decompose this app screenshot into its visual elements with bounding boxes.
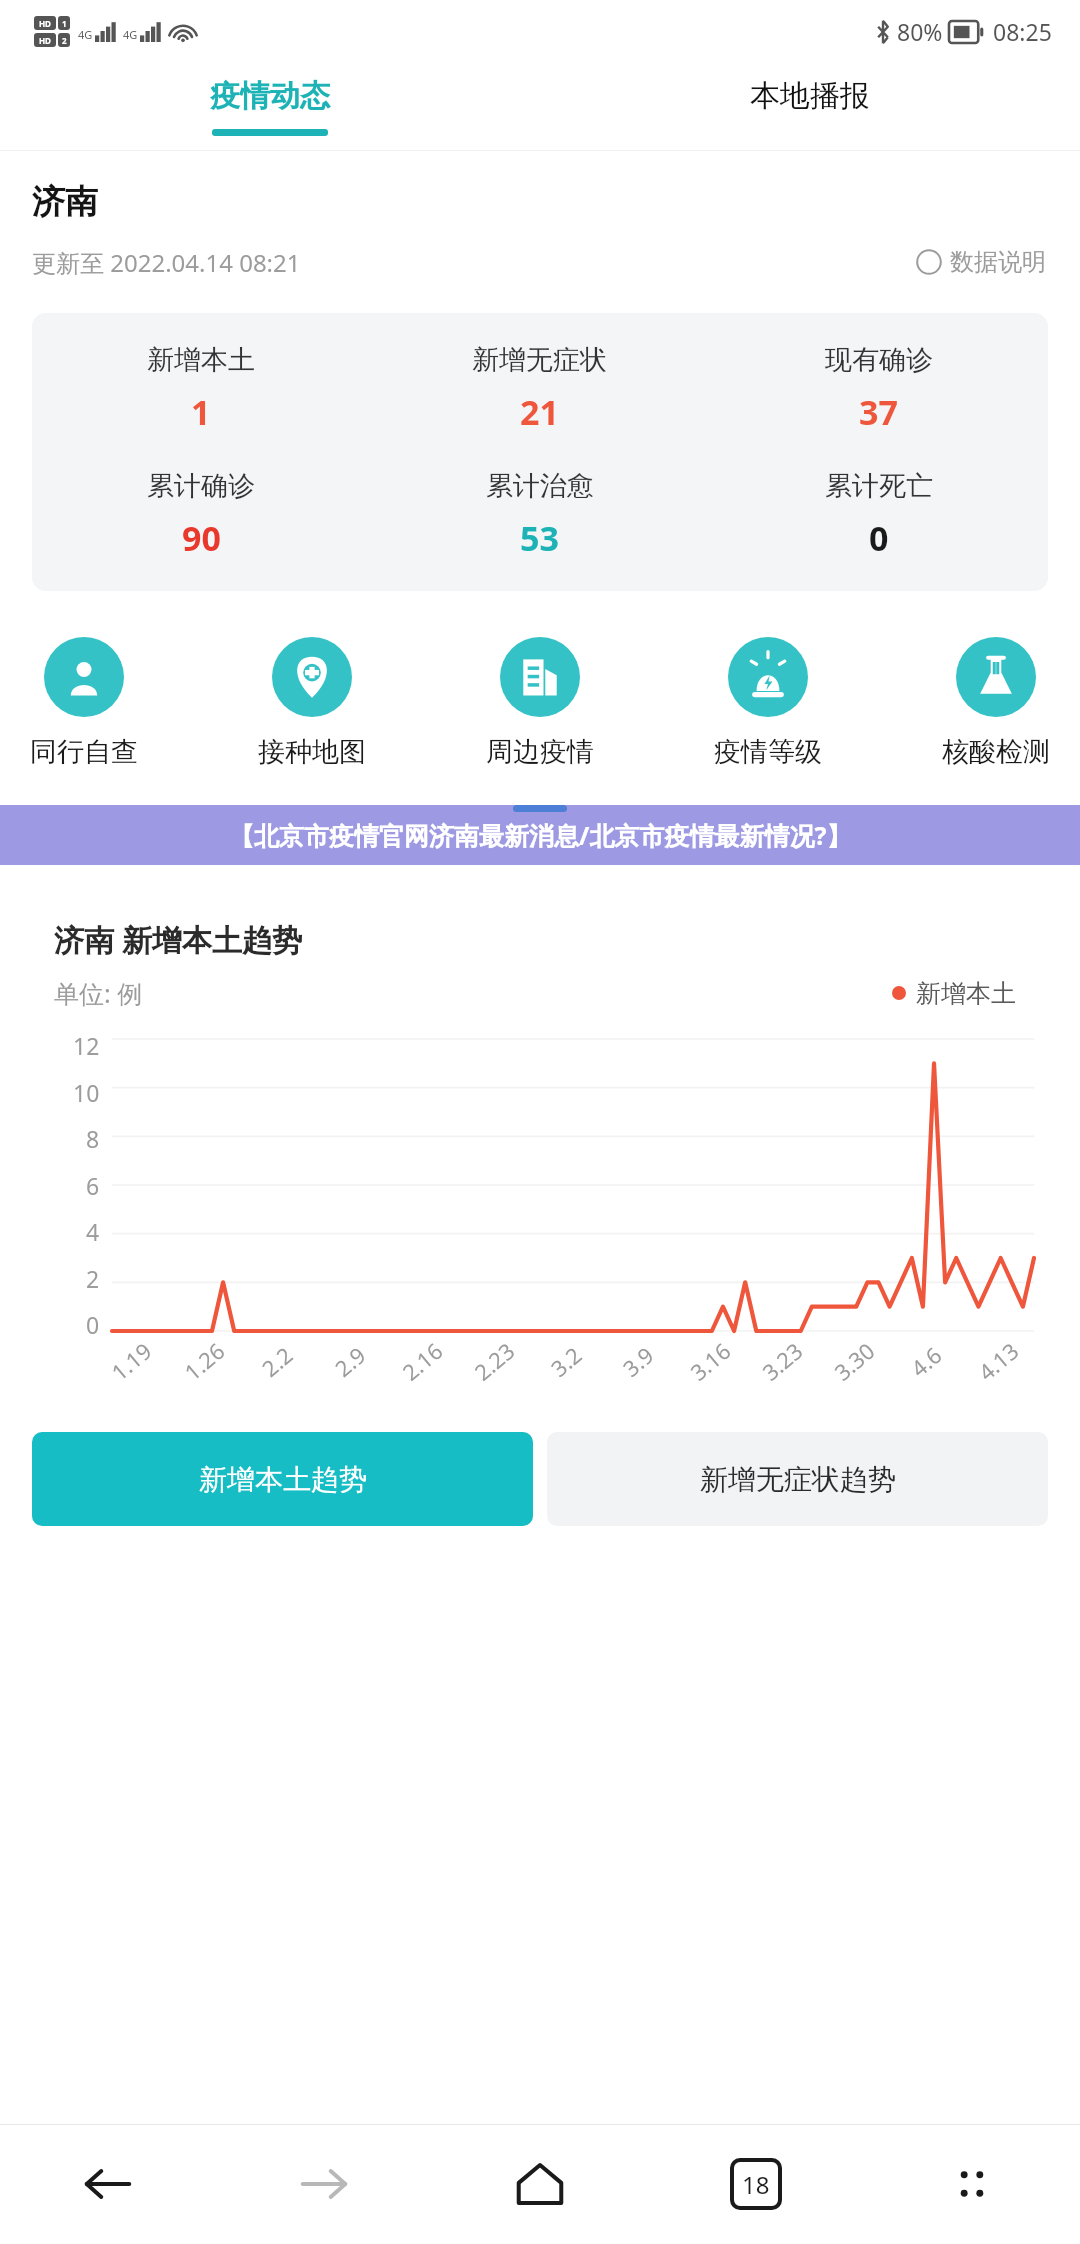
staticText: 现有确诊 (825, 343, 933, 377)
button[interactable]: 累计治愈 (370, 469, 709, 561)
staticText: 21 (520, 389, 559, 435)
button[interactable]: Home (432, 2124, 648, 2244)
button[interactable]: 累计确诊 (32, 469, 370, 561)
staticText: 核酸检测 (942, 735, 1050, 769)
staticText: 2 (86, 1263, 100, 1294)
staticText: 3.2 (544, 1339, 588, 1383)
staticText: 新增本土 (916, 978, 1016, 1009)
staticText: 10 (73, 1077, 100, 1108)
staticText: 同行自查 (30, 735, 138, 769)
button[interactable]: 疫情等级 (708, 637, 828, 769)
staticText: 80% (897, 16, 943, 47)
button[interactable]: 新增本土 (32, 343, 370, 435)
staticText: 累计确诊 (147, 469, 255, 503)
staticText: 本地播报 (750, 77, 870, 115)
button[interactable]: 核酸检测 (936, 637, 1056, 769)
staticText: 18 (742, 2168, 770, 2201)
button[interactable]: 疫情动态 (0, 62, 540, 150)
button[interactable]: Forward (216, 2124, 432, 2244)
staticText: 6 (86, 1170, 100, 1201)
staticText: 08:25 (993, 16, 1052, 47)
staticText: 更新至 2022.04.14 08:21 (32, 246, 301, 279)
staticText: 53 (520, 515, 559, 561)
staticText: 3.9 (616, 1339, 660, 1383)
staticText: 疫情动态 (210, 77, 330, 115)
staticText: 新增本土 (147, 343, 255, 377)
button[interactable]: 同行自查 (24, 637, 144, 769)
staticText: 1.26 (177, 1335, 230, 1387)
button[interactable]: More (864, 2124, 1080, 2244)
staticText: 累计死亡 (825, 469, 933, 503)
staticText: 累计治愈 (486, 469, 594, 503)
staticText: 济南 (32, 181, 98, 223)
button[interactable]: 数据说明 (912, 243, 1050, 281)
staticText: 【北京市疫情官网济南最新消息/北京市疫情最新情况?】 (229, 818, 852, 852)
staticText: 单位: 例 (54, 976, 143, 1010)
staticText: HD (39, 18, 51, 29)
staticText: 济南 新增本土趋势 (54, 919, 302, 960)
staticText: 3.23 (755, 1335, 808, 1387)
staticText: 接种地图 (258, 735, 366, 769)
staticText: 周边疫情 (486, 735, 594, 769)
staticText: 90 (182, 515, 221, 561)
button[interactable]: 新增无症状趋势 (547, 1432, 1048, 1526)
button[interactable]: 累计死亡 (709, 469, 1048, 561)
staticText: 37 (859, 389, 898, 435)
staticText: 4G (78, 27, 93, 42)
button[interactable]: 本地播报 (540, 62, 1080, 150)
staticText: 2.16 (395, 1335, 448, 1387)
staticText: 2 (62, 35, 67, 46)
staticText: 4.6 (904, 1339, 948, 1383)
staticText: 4.13 (971, 1335, 1024, 1387)
staticText: 2.23 (467, 1335, 520, 1387)
staticText: 1.19 (104, 1335, 157, 1387)
staticText: 1 (191, 389, 211, 435)
staticText: 新增无症状趋势 (700, 1462, 896, 1497)
staticText: 12 (73, 1030, 100, 1061)
staticText: 新增无症状 (472, 343, 607, 377)
staticText: HD (39, 35, 51, 46)
staticText: 4G (123, 27, 138, 42)
button[interactable]: 新增无症状 (370, 343, 709, 435)
staticText: 数据说明 (950, 247, 1046, 277)
staticText: 新增本土趋势 (199, 1462, 367, 1497)
staticText: 0 (869, 515, 889, 561)
staticText: 1 (62, 18, 67, 29)
staticText: 2.9 (328, 1339, 372, 1383)
staticText: 4 (86, 1216, 100, 1247)
staticText: 0 (86, 1309, 100, 1340)
staticText: 疫情等级 (714, 735, 822, 769)
button[interactable]: 周边疫情 (480, 637, 600, 769)
staticText: 3.30 (827, 1335, 880, 1387)
button[interactable]: Tabs (648, 2124, 864, 2244)
staticText: 3.16 (683, 1335, 736, 1387)
button[interactable]: Back (0, 2124, 216, 2244)
button[interactable]: 新增本土趋势 (32, 1432, 533, 1526)
staticText: 2.2 (255, 1339, 299, 1383)
button[interactable]: 现有确诊 (709, 343, 1048, 435)
button[interactable]: 接种地图 (252, 637, 372, 769)
staticText: 8 (86, 1123, 100, 1154)
